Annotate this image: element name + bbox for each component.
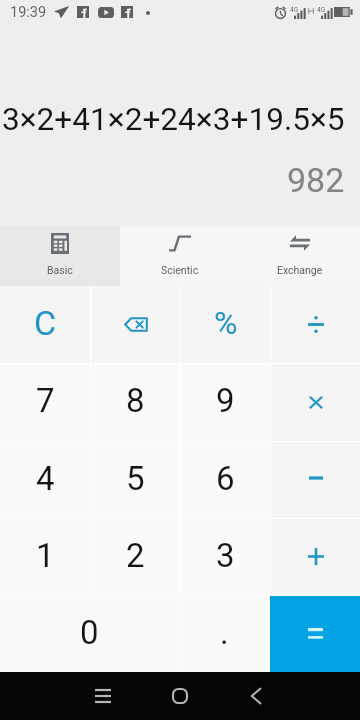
button[interactable]: C — [0, 286, 90, 363]
button[interactable]: 9 — [181, 364, 270, 441]
button[interactable]: Equals — [270, 596, 360, 672]
staticText: 982 — [287, 160, 345, 200]
staticText: 1 — [36, 536, 55, 575]
button[interactable]: Recent apps — [78, 672, 128, 720]
staticText: Basic — [47, 264, 73, 276]
staticText: 4G — [317, 6, 326, 14]
button[interactable]: Scientic — [120, 226, 240, 286]
staticText: 7 — [36, 381, 55, 420]
button[interactable]: Plus — [271, 519, 360, 595]
button[interactable]: 7 — [0, 364, 90, 441]
button[interactable]: 4 — [0, 442, 90, 518]
staticText: % — [214, 304, 238, 342]
staticText: 5 — [126, 459, 145, 498]
button[interactable]: Home — [155, 672, 205, 720]
button[interactable]: 1 — [0, 519, 90, 595]
staticText: 19:39 — [10, 4, 47, 21]
staticText: C — [34, 303, 57, 343]
staticText: 3 — [216, 536, 235, 575]
button[interactable]: Basic — [0, 226, 120, 286]
button[interactable]: . — [179, 596, 269, 672]
staticText: 2 — [126, 536, 145, 575]
button[interactable]: 8 — [91, 364, 180, 441]
staticText: 3×2+41×2+24×3+19.5×5 — [2, 101, 345, 138]
button[interactable]: 2 — [91, 519, 180, 595]
staticText: . — [220, 613, 229, 652]
staticText: 8 — [126, 381, 145, 420]
button[interactable]: Divide — [271, 286, 360, 363]
staticText: 4G — [290, 6, 299, 14]
staticText: 4 — [36, 459, 55, 498]
staticText: 9 — [216, 381, 235, 420]
button[interactable]: Back — [231, 672, 281, 720]
button[interactable]: Backspace — [91, 286, 180, 363]
button[interactable]: Minus — [271, 442, 360, 518]
button[interactable]: Exchange — [240, 226, 360, 286]
staticText: Scientic — [161, 264, 199, 276]
staticText: 0 — [80, 613, 99, 652]
button[interactable]: 0 — [0, 596, 178, 672]
staticText: 6 — [216, 459, 235, 498]
staticText: Exchange — [277, 264, 323, 276]
button[interactable]: 5 — [91, 442, 180, 518]
button[interactable]: % — [181, 286, 270, 363]
button[interactable]: 6 — [181, 442, 270, 518]
button[interactable]: 3 — [181, 519, 270, 595]
button[interactable]: Multiply — [271, 364, 360, 441]
